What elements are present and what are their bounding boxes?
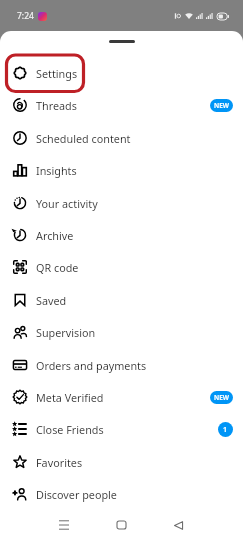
staticText: Saved [36, 293, 67, 308]
button[interactable]: Back [165, 512, 192, 538]
staticText: Meta Verified [36, 390, 104, 405]
button[interactable]: Orders and payments [0, 349, 243, 381]
staticText: 1 [223, 425, 228, 435]
button[interactable]: Your activity [0, 187, 243, 219]
staticText: Close Friends [36, 422, 104, 437]
staticText: 7:24 [17, 10, 34, 22]
button[interactable]: Favorites [0, 446, 243, 478]
staticText: QR code [36, 260, 79, 275]
button[interactable]: QR code [0, 251, 243, 283]
button[interactable]: Threads [0, 89, 243, 121]
staticText: Settings [36, 66, 78, 81]
staticText: NEW [214, 393, 229, 402]
button[interactable]: Saved [0, 284, 243, 316]
button[interactable]: Insights [0, 154, 243, 186]
button[interactable]: Settings [0, 57, 243, 89]
button[interactable]: Scheduled content [0, 122, 243, 154]
staticText: Threads [36, 98, 77, 113]
staticText: Your activity [36, 196, 98, 211]
staticText: Archive [36, 228, 74, 243]
staticText: Scheduled content [36, 131, 131, 146]
button[interactable]: Meta Verified [0, 381, 243, 413]
button[interactable]: Supervision [0, 316, 243, 348]
button[interactable]: Archive [0, 219, 243, 251]
staticText: Insights [36, 163, 77, 178]
staticText: Favorites [36, 455, 83, 470]
staticText: Orders and payments [36, 358, 147, 373]
button[interactable]: Discover people [0, 478, 243, 510]
button[interactable]: Recent apps [49, 512, 78, 538]
button[interactable]: Home [107, 512, 135, 538]
staticText: Discover people [36, 487, 117, 502]
staticText: NEW [214, 101, 229, 110]
staticText: Supervision [36, 325, 96, 340]
button[interactable]: Close Friends [0, 413, 243, 445]
